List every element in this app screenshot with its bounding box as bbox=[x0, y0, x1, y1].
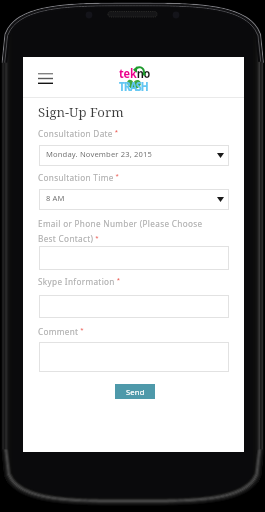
staticText: TRASH bbox=[119, 78, 148, 94]
staticText: Sign-Up Form bbox=[38, 103, 124, 121]
staticText: Email or Phone Number (Please Choose Bes… bbox=[38, 218, 203, 245]
staticText: Comment * bbox=[38, 326, 84, 338]
button[interactable]: Menu bbox=[33, 66, 57, 90]
button[interactable]: Input field bbox=[39, 295, 229, 318]
staticText: 8 AM bbox=[46, 193, 65, 203]
staticText: tekno bbox=[119, 64, 151, 82]
staticText: Send bbox=[126, 387, 145, 397]
staticText: Consultation Time * bbox=[38, 172, 120, 184]
staticText: Skype Information * bbox=[38, 276, 121, 288]
button[interactable]: Send bbox=[115, 384, 155, 399]
button[interactable]: Input field bbox=[39, 342, 229, 372]
button[interactable]: Input field bbox=[39, 246, 229, 270]
button[interactable]: Monday. November 23, 2015 bbox=[39, 145, 229, 166]
button[interactable]: 8 AM bbox=[39, 189, 229, 210]
staticText: Consultation Date * bbox=[38, 128, 119, 140]
staticText: Monday. November 23, 2015 bbox=[46, 149, 153, 159]
